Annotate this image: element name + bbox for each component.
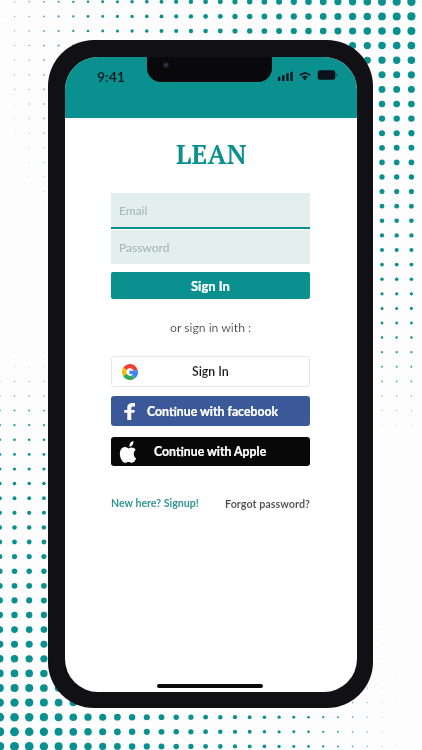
staticText: LEAN xyxy=(176,137,247,172)
staticText: Password xyxy=(119,240,170,254)
button[interactable]: Sign In xyxy=(111,356,310,387)
staticText: Sign In xyxy=(191,278,230,294)
button[interactable]: Continue with Apple xyxy=(111,437,310,466)
staticText: or sign in with : xyxy=(170,320,252,335)
staticText: Continue with facebook xyxy=(147,404,279,419)
button[interactable]: Forgot password? xyxy=(225,497,310,510)
button[interactable]: Password xyxy=(111,230,310,264)
button[interactable]: New here? Signup! xyxy=(111,497,199,510)
staticText: Sign In xyxy=(192,364,229,379)
button[interactable]: Email xyxy=(111,193,310,227)
staticText: Continue with Apple xyxy=(154,444,267,459)
staticText: Email xyxy=(119,203,148,217)
button[interactable]: Continue with facebook xyxy=(111,396,310,426)
staticText: 9:41 xyxy=(97,68,125,85)
button[interactable]: Sign In xyxy=(111,272,310,299)
